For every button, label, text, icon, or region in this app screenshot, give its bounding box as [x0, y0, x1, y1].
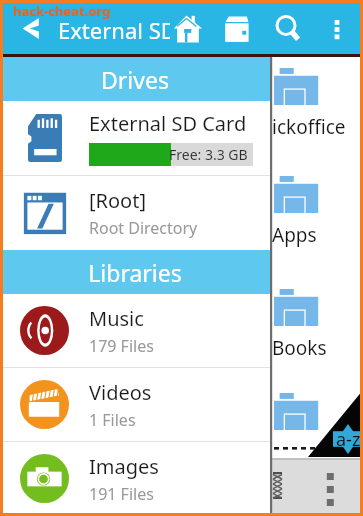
button[interactable]: More options	[322, 14, 352, 44]
staticText: Images	[89, 453, 159, 480]
staticText: Root Directory	[89, 217, 198, 239]
button[interactable]: Images	[0, 442, 270, 515]
staticText: External SD Card	[89, 110, 247, 137]
staticText: Free: 3.3 GB	[169, 145, 248, 164]
button[interactable]: Home	[173, 14, 203, 44]
staticText: Libraries	[88, 257, 182, 288]
staticText: Books	[272, 335, 327, 361]
staticText: ickoffice	[272, 114, 346, 140]
button[interactable]: ickoffice	[272, 68, 363, 148]
button[interactable]: Apps	[272, 176, 363, 256]
staticText: Videos	[89, 379, 152, 406]
staticText: Apps	[272, 222, 317, 248]
staticText: [Root]	[89, 187, 147, 214]
button[interactable]: Books	[272, 289, 363, 369]
staticText: External SD	[58, 15, 170, 43]
staticText: 179 Files	[89, 335, 154, 357]
button[interactable]: Storage	[224, 14, 254, 44]
staticText: 191 Files	[89, 483, 154, 505]
button[interactable]	[272, 393, 363, 473]
button[interactable]: Sort A to Z	[333, 424, 363, 454]
button[interactable]: External SD Card	[0, 101, 270, 175]
button[interactable]: [Root]	[0, 176, 270, 250]
button[interactable]: More	[316, 466, 346, 506]
button[interactable]: Search	[274, 14, 304, 44]
button[interactable]: Back	[17, 16, 45, 41]
button[interactable]: Music	[0, 294, 270, 367]
staticText: Music	[89, 305, 144, 332]
button[interactable]: Videos	[0, 368, 270, 441]
staticText: Drives	[101, 64, 169, 95]
staticText: hack-cheat.org	[13, 2, 111, 20]
staticText: 1 Files	[89, 409, 136, 431]
staticText: a-z	[336, 427, 361, 452]
